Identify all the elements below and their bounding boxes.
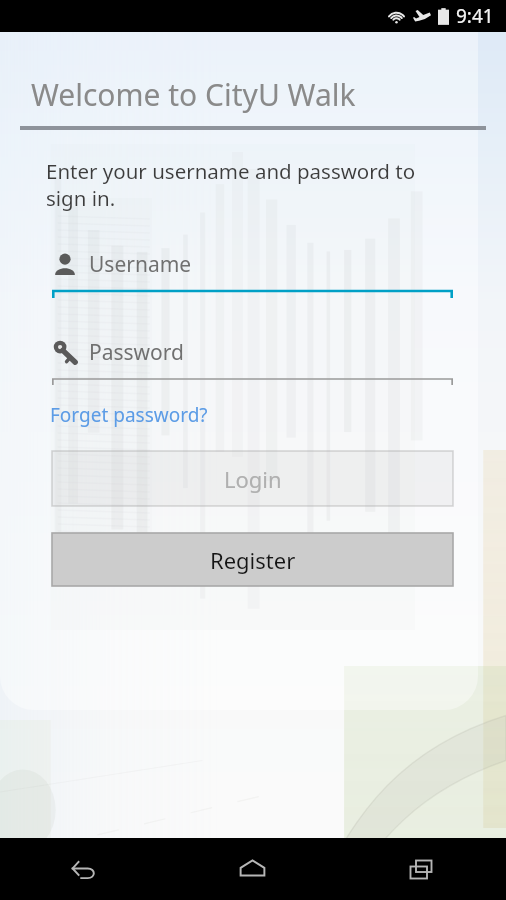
staticText: 9:41 — [456, 3, 494, 29]
staticText: Register — [210, 545, 296, 575]
button[interactable]: Username — [52, 250, 453, 296]
button[interactable]: Register — [52, 533, 453, 586]
button[interactable]: Back — [0, 838, 168, 900]
staticText: Forget password? — [50, 402, 208, 428]
button[interactable]: Home — [168, 838, 337, 900]
staticText: Welcome to CityU Walk — [31, 74, 356, 115]
button[interactable]: Recent apps — [337, 838, 506, 900]
button[interactable]: Password — [52, 338, 453, 384]
button[interactable]: Login — [52, 451, 453, 506]
staticText: Username — [89, 250, 192, 279]
button[interactable]: Forget password? — [50, 402, 208, 428]
staticText: Login — [224, 464, 282, 494]
staticText: Enter your username and password to sign… — [46, 157, 454, 212]
staticText: Password — [89, 338, 184, 367]
